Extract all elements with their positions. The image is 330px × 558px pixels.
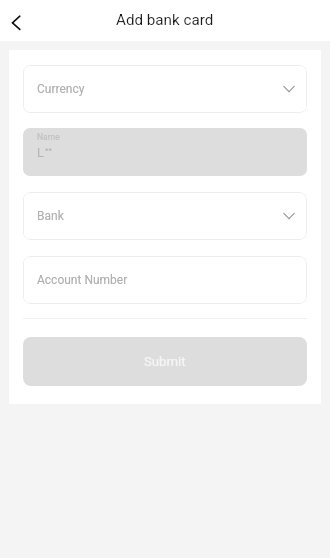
- button[interactable]: Back: [0, 0, 40, 41]
- button[interactable]: Account Number: [23, 256, 307, 304]
- button[interactable]: Bank: [23, 192, 307, 240]
- staticText: Bank: [37, 209, 64, 223]
- staticText: Name: [37, 132, 60, 142]
- button[interactable]: Submit: [23, 337, 307, 386]
- button[interactable]: Currency: [23, 65, 307, 113]
- staticText: Account Number: [37, 273, 128, 287]
- staticText: Add bank card: [116, 11, 214, 29]
- staticText: L: [37, 145, 44, 160]
- staticText: **: [45, 146, 52, 155]
- staticText: Currency: [37, 82, 85, 96]
- staticText: Submit: [144, 354, 186, 369]
